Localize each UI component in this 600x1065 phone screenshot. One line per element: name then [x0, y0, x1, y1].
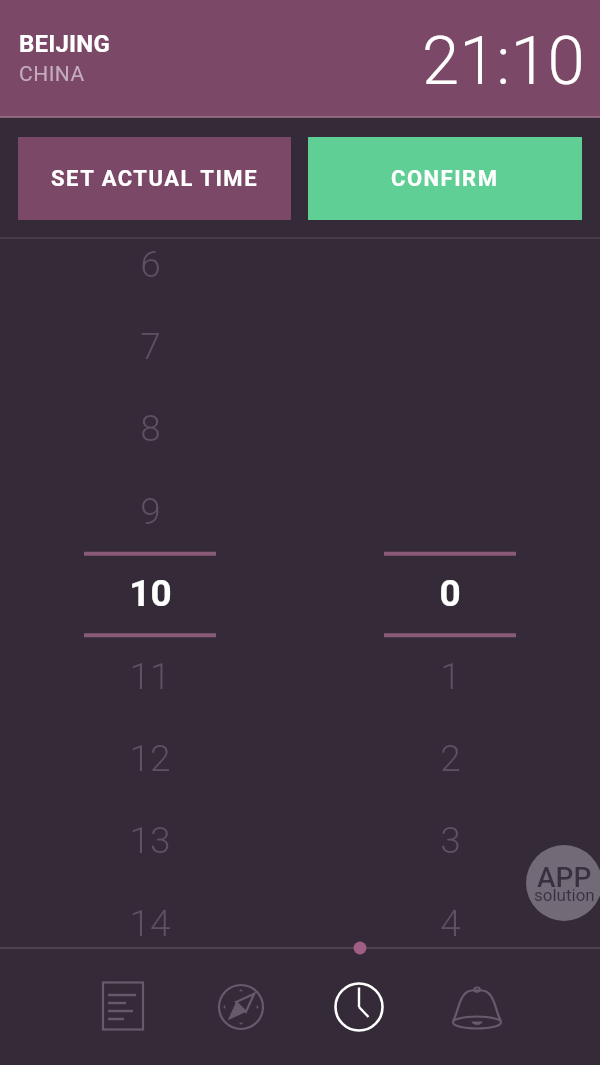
staticText: 1	[440, 655, 461, 698]
button[interactable]: 14	[84, 882, 216, 964]
button[interactable]: 1	[384, 635, 516, 717]
button[interactable]: Articles	[64, 948, 182, 1065]
button[interactable]: 13	[84, 799, 216, 881]
button[interactable]: 12	[84, 717, 216, 799]
button[interactable]: 4	[384, 882, 516, 964]
staticText: CHINA	[19, 62, 85, 87]
button[interactable]: 8	[84, 387, 216, 469]
button[interactable]: 3	[384, 799, 516, 881]
button[interactable]: CONFIRM	[308, 137, 582, 220]
button[interactable]: 9	[84, 470, 216, 552]
staticText: 14	[129, 902, 171, 945]
button[interactable]: 2	[384, 717, 516, 799]
button[interactable]: Explore	[182, 948, 300, 1065]
button[interactable]: SET ACTUAL TIME	[18, 137, 291, 220]
button[interactable]: Clock	[300, 948, 418, 1065]
button[interactable]: Alarms	[418, 948, 536, 1065]
button[interactable]: 10	[84, 552, 216, 634]
staticText: 6	[140, 243, 161, 286]
staticText: CONFIRM	[391, 166, 499, 192]
button[interactable]: 6	[84, 223, 216, 305]
button[interactable]: 0	[384, 552, 516, 634]
staticText: 10	[129, 572, 172, 615]
staticText: 0	[439, 572, 461, 615]
staticText: 2	[440, 737, 461, 780]
button[interactable]: 11	[84, 635, 216, 717]
staticText: 8	[140, 407, 161, 450]
staticText: 4	[440, 902, 461, 945]
staticText: SET ACTUAL TIME	[51, 166, 259, 192]
staticText: 11	[129, 655, 171, 698]
button[interactable]: 7	[84, 305, 216, 387]
staticText: 7	[140, 325, 161, 368]
staticText: 3	[440, 819, 461, 862]
staticText: 13	[129, 819, 171, 862]
staticText: 9	[140, 490, 161, 533]
staticText: BEIJING	[19, 30, 110, 58]
staticText: solution	[534, 885, 595, 905]
staticText: 21:10	[422, 22, 585, 101]
staticText: APP	[537, 861, 592, 894]
staticText: 12	[129, 737, 171, 780]
